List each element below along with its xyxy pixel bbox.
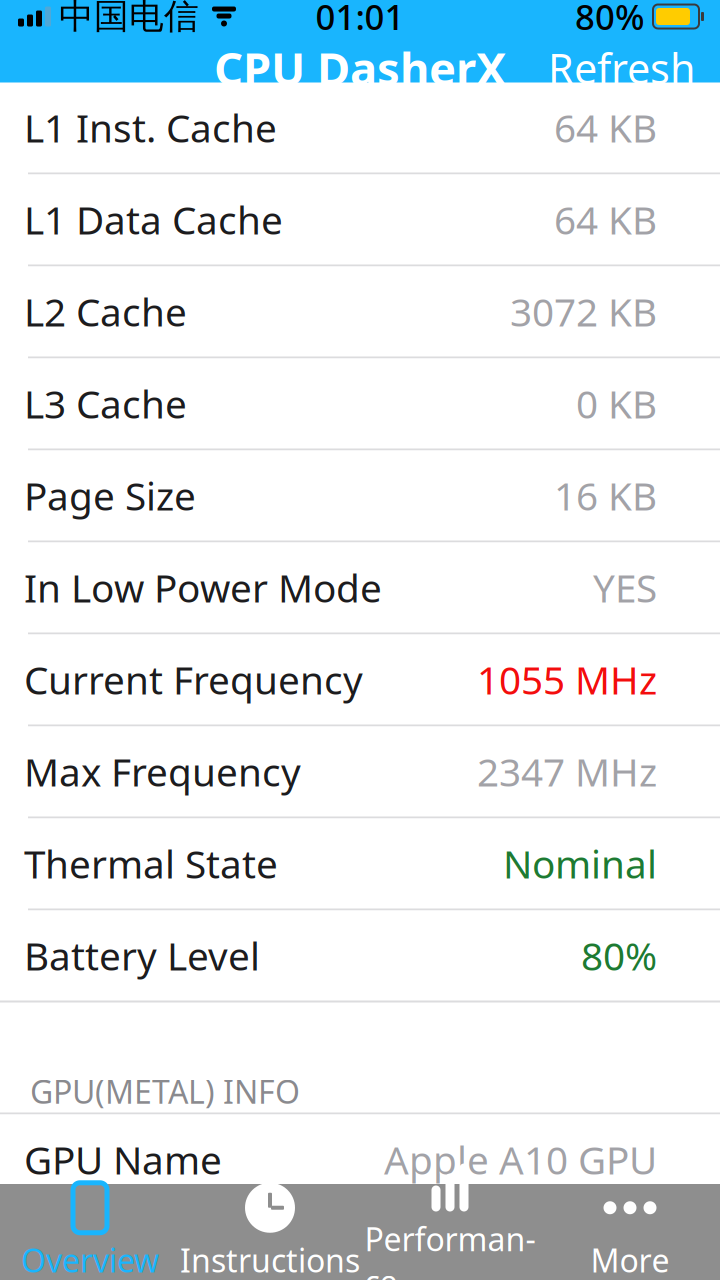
button[interactable]: Battery Level (0, 910, 720, 1000)
staticText: Overview (21, 1239, 159, 1280)
button[interactable]: Max Frequency (0, 726, 720, 816)
staticText: 16 KB (554, 470, 657, 521)
staticText: 80% (575, 0, 645, 39)
button[interactable]: L1 Data Cache (0, 174, 720, 264)
button[interactable]: In Low Power Mode (0, 542, 720, 632)
staticText: 64 KB (554, 102, 657, 153)
button[interactable]: Refresh (534, 31, 710, 105)
staticText: L1 Inst. Cache (24, 102, 277, 153)
staticText: Page Size (24, 470, 196, 521)
staticText: Instructions (180, 1239, 360, 1280)
button[interactable]: Thermal State (0, 818, 720, 908)
button[interactable]: L1 Inst. Cache (0, 82, 720, 172)
staticText: YES (593, 562, 657, 613)
staticText: Apple A10 GPU (384, 1134, 657, 1185)
staticText: L2 Cache (24, 286, 187, 337)
staticText: 1055 MHz (477, 654, 657, 705)
button[interactable]: Instructions (180, 1184, 360, 1280)
staticText: GPU Name (24, 1134, 222, 1185)
staticText: 0 KB (576, 378, 657, 429)
button[interactable]: Overview (0, 1184, 180, 1280)
button[interactable]: More (540, 1184, 720, 1280)
button[interactable]: L2 Cache (0, 266, 720, 356)
staticText: Max Frequency (24, 746, 301, 797)
staticText: CPU DasherX (214, 38, 506, 98)
staticText: 64 KB (554, 194, 657, 245)
button[interactable]: GPU Name (0, 1114, 720, 1204)
staticText: L1 Data Cache (24, 194, 283, 245)
staticText: 80% (581, 930, 657, 981)
staticText: Refresh (548, 41, 696, 95)
staticText: GPU(METAL) INFO (30, 1070, 300, 1112)
staticText: Current Frequency (24, 654, 363, 705)
staticText: Performance (364, 1217, 535, 1280)
staticText: L3 Cache (24, 378, 187, 429)
staticText: Battery Level (24, 930, 260, 981)
staticText: More (590, 1239, 669, 1280)
button[interactable]: L3 Cache (0, 358, 720, 448)
staticText: Nominal (503, 838, 657, 889)
button[interactable]: Current Frequency (0, 634, 720, 724)
button[interactable]: Page Size (0, 450, 720, 540)
staticText: 3072 KB (510, 286, 657, 337)
button[interactable]: Performance (360, 1184, 540, 1280)
staticText: 中国电信 (59, 0, 199, 38)
staticText: 01:01 (315, 0, 404, 39)
staticText: 2347 MHz (477, 746, 657, 797)
staticText: In Low Power Mode (24, 562, 382, 613)
staticText: Thermal State (24, 838, 278, 889)
